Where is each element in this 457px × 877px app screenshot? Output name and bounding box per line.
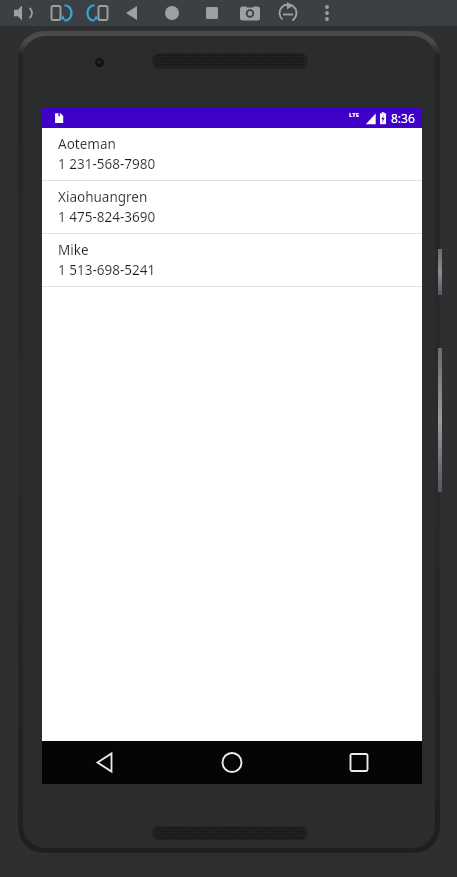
staticText: Xiaohuangren: [58, 188, 148, 206]
button[interactable]: Back: [42, 741, 168, 784]
button[interactable]: Emulator control: [115, 0, 149, 26]
staticText: 1 475-824-3690: [58, 208, 156, 226]
button[interactable]: Emulator control: [82, 0, 116, 26]
staticText: LTE: [349, 111, 360, 119]
button[interactable]: Power: [438, 249, 442, 295]
button[interactable]: Xiaohuangren: [42, 181, 422, 233]
button[interactable]: Emulator control: [271, 0, 305, 26]
button[interactable]: Emulator control: [233, 0, 267, 26]
button[interactable]: Aoteman: [42, 128, 422, 180]
button[interactable]: Mike: [42, 234, 422, 286]
staticText: 8:36: [391, 110, 415, 126]
staticText: 1 513-698-5241: [58, 261, 156, 279]
button[interactable]: Emulator control: [195, 0, 229, 26]
staticText: Aoteman: [58, 135, 116, 153]
button[interactable]: Home: [168, 741, 295, 784]
button[interactable]: Emulator control: [4, 0, 38, 26]
staticText: 1 231-568-7980: [58, 155, 156, 173]
button[interactable]: Emulator control: [155, 0, 189, 26]
staticText: Mike: [58, 241, 89, 259]
button[interactable]: Emulator control: [310, 0, 344, 26]
button[interactable]: Recents: [295, 741, 422, 784]
button[interactable]: Volume: [438, 348, 442, 492]
button[interactable]: Emulator control: [43, 0, 77, 26]
